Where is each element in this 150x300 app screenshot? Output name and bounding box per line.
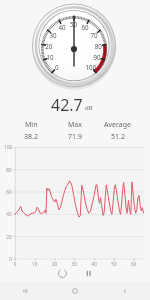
staticText: 71.9 bbox=[68, 132, 82, 142]
button[interactable]: Back bbox=[100, 282, 150, 300]
button[interactable]: Home bbox=[50, 282, 100, 300]
staticText: 42.7 bbox=[51, 94, 83, 114]
staticText: 51.2 bbox=[111, 132, 125, 142]
button[interactable]: Recent apps bbox=[0, 282, 50, 300]
staticText: Min bbox=[25, 120, 38, 130]
button[interactable]: Pause bbox=[79, 264, 97, 282]
button[interactable]: Reset bbox=[53, 264, 71, 282]
staticText: 38.2 bbox=[24, 132, 38, 142]
staticText: Max bbox=[68, 120, 82, 130]
staticText: dB bbox=[85, 104, 93, 112]
staticText: Average bbox=[104, 120, 131, 130]
